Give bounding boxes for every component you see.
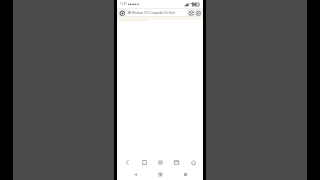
button[interactable]: Bookmark [138, 157, 150, 168]
button[interactable]: Back [121, 157, 133, 168]
button[interactable]: Recent apps [178, 168, 192, 180]
staticText: 13:50 ▪▪▪▪▪ ▪ [120, 2, 140, 6]
button[interactable]: Back [128, 168, 142, 180]
button[interactable]: Close tab [188, 10, 194, 16]
button[interactable]: Menu [119, 10, 125, 16]
button[interactable]: Tabs [170, 157, 182, 168]
button[interactable]: Home [187, 157, 199, 168]
button[interactable]: Home [153, 168, 167, 180]
button[interactable]: Menu [154, 157, 166, 168]
button[interactable]: Settings [195, 10, 201, 16]
button[interactable]: Windows 10 S Compatible Full Html [126, 9, 187, 16]
staticText: Windows 10 S Compatible Full Html [132, 11, 176, 15]
